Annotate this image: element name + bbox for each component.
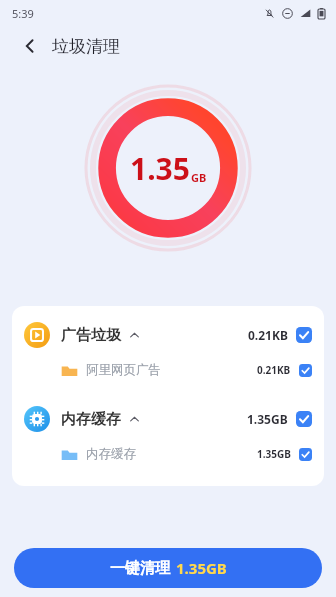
button[interactable]: Back [14,30,46,62]
staticText: 一键清理 [110,559,170,578]
staticText: 1.35GB [247,411,288,427]
button[interactable]: 内存缓存 [12,438,324,470]
staticText: 广告垃圾 [61,326,121,345]
staticText: 5:39 [12,6,34,21]
staticText: 1.35GB [176,558,227,578]
button[interactable]: Selected [299,364,312,377]
button[interactable]: Selected [299,448,312,461]
button[interactable]: 一键清理 [14,548,322,588]
staticText: 1.35 [130,148,190,189]
staticText: 0.21KB [248,327,288,343]
staticText: GB [191,170,207,185]
staticText: 垃圾清理 [52,36,120,57]
button[interactable]: Selected [296,411,312,427]
staticText: 内存缓存 [86,446,136,462]
button[interactable]: 阿里网页广告 [12,354,324,386]
button[interactable]: Selected [296,327,312,343]
staticText: 1.35GB [257,447,291,461]
staticText: 阿里网页广告 [86,362,161,378]
button[interactable]: 广告垃圾 [12,316,324,354]
staticText: 0.21KB [257,363,291,377]
button[interactable]: 内存缓存 [12,400,324,438]
staticText: 内存缓存 [61,410,121,429]
